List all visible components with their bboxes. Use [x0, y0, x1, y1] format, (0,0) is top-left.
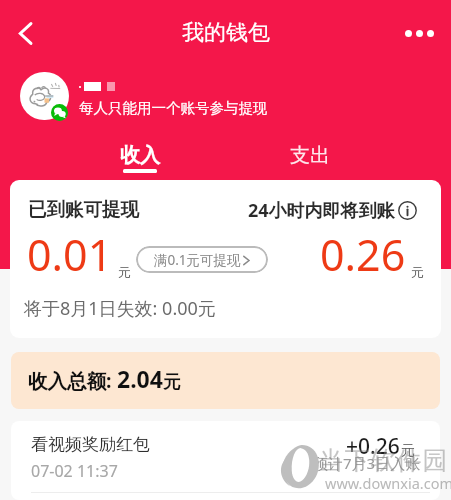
- button[interactable]: 收入总额:: [11, 352, 440, 409]
- staticText: 每人只能用一个账号参与提现: [79, 99, 268, 117]
- staticText: 元: [411, 264, 424, 280]
- button[interactable]: More options: [399, 13, 439, 53]
- button[interactable]: 看视频奖励红包: [11, 421, 440, 492]
- staticText: 满0.1元可提现: [154, 251, 241, 269]
- staticText: +0.26: [346, 432, 400, 461]
- staticText: 2.04: [117, 363, 163, 394]
- staticText: www.downxia.com: [325, 473, 451, 493]
- staticText: 收入总额:: [28, 367, 117, 394]
- staticText: 元: [118, 264, 131, 280]
- staticText: 0.26: [320, 225, 406, 284]
- staticText: 将于8月1日失效: 0.00元: [24, 296, 216, 321]
- staticText: 看视频奖励红包: [31, 434, 150, 455]
- staticText: 元: [401, 442, 415, 460]
- button[interactable]: Back: [5, 13, 45, 53]
- button[interactable]: 收入: [113, 143, 167, 173]
- button[interactable]: 满0.1元可提现: [136, 246, 268, 273]
- staticText: 当下软件园: [318, 445, 448, 476]
- staticText: 07-02 11:37: [31, 460, 118, 482]
- staticText: 0.01: [27, 225, 113, 284]
- button[interactable]: 支出: [283, 143, 337, 168]
- staticText: 预计7月3日入账: [313, 453, 421, 473]
- staticText: 24小时内即将到账: [248, 198, 395, 223]
- staticText: 我的钱包: [182, 19, 270, 47]
- staticText: 收入: [120, 143, 160, 168]
- staticText: 支出: [290, 143, 330, 168]
- staticText: 元: [163, 371, 181, 393]
- staticText: 已到账可提现: [28, 198, 139, 221]
